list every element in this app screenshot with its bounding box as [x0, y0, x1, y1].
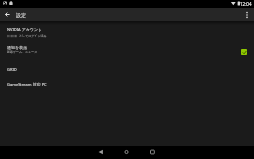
button[interactable]: GRID: [0, 62, 254, 74]
staticText: 設定: [16, 12, 26, 18]
button[interactable]: 通知を表示: [0, 41, 254, 58]
button[interactable]: Show notifications toggle: [241, 49, 247, 55]
staticText: 12:04: [240, 1, 252, 7]
staticText: GameStream 対応 PC: [7, 82, 47, 87]
staticText: GRID: [7, 67, 17, 72]
button[interactable]: Back: [1, 8, 14, 21]
staticText: NVIDIA アカウント: [7, 27, 43, 32]
staticText: としてログイン済み: [19, 34, 47, 38]
button[interactable]: NVIDIA アカウント: [0, 24, 254, 41]
button[interactable]: GameStream 対応 PC: [0, 77, 254, 89]
button[interactable]: More options: [241, 9, 253, 21]
staticText: 新着ゲーム、ニュース: [7, 50, 38, 54]
staticText: 通知を表示: [7, 45, 28, 50]
